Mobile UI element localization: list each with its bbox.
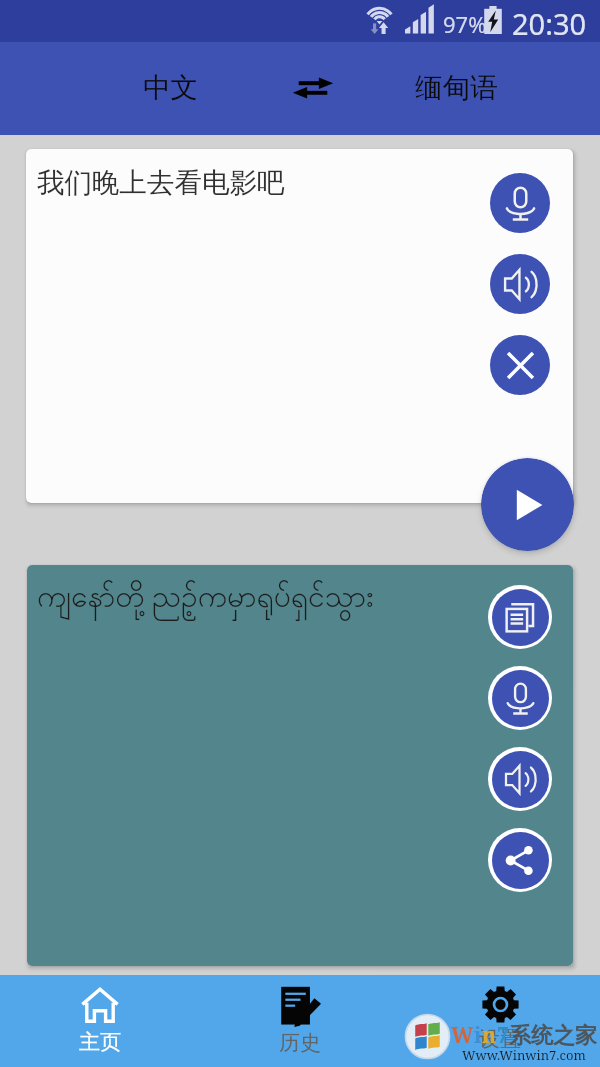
- button[interactable]: Translate: [481, 458, 574, 551]
- staticText: Www.Winwin7.com: [462, 1046, 586, 1064]
- staticText: 系统之家: [509, 1022, 597, 1050]
- staticText: i: [474, 1021, 482, 1050]
- button[interactable]: 设置: [400, 975, 600, 1052]
- staticText: 7: [497, 1021, 509, 1050]
- staticText: 中文: [143, 71, 198, 106]
- staticText: 20:30: [512, 4, 587, 43]
- button[interactable]: Speak: [490, 254, 550, 314]
- button[interactable]: Copy: [488, 585, 552, 649]
- button[interactable]: Clear: [490, 335, 550, 395]
- staticText: W: [451, 1021, 474, 1050]
- button[interactable]: Speak: [488, 747, 552, 811]
- button[interactable]: Share: [488, 828, 552, 892]
- staticText: n: [482, 1021, 497, 1050]
- staticText: 主页: [79, 1029, 121, 1055]
- staticText: 设置: [479, 1026, 521, 1052]
- button[interactable]: 主页: [0, 975, 200, 1055]
- button[interactable]: Voice input: [490, 173, 550, 233]
- staticText: 缅甸语: [415, 71, 498, 106]
- staticText: 历史: [279, 1030, 321, 1056]
- button[interactable]: 缅甸语: [366, 42, 546, 135]
- button[interactable]: 中文: [80, 42, 260, 135]
- staticText: 97%: [443, 9, 487, 39]
- staticText: ကျနော်တို့ညဉ့်ကမှာရုပ်ရှင်သွား: [37, 577, 374, 621]
- button[interactable]: Voice input: [488, 666, 552, 730]
- button[interactable]: 历史: [200, 975, 400, 1056]
- staticText: 我们晚上去看电影吧: [37, 166, 285, 201]
- button[interactable]: Swap languages: [268, 58, 358, 118]
